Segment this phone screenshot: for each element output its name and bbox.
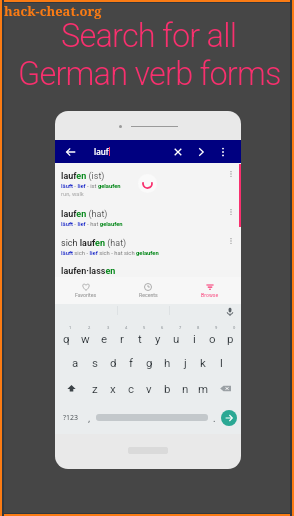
- button[interactable]: 9: [203, 323, 221, 349]
- staticText: Recents: [139, 292, 158, 298]
- button[interactable]: s: [85, 349, 104, 375]
- staticText: y: [155, 332, 161, 345]
- staticText: j: [184, 356, 187, 369]
- button[interactable]: Item menu: [226, 169, 236, 179]
- button[interactable]: .: [208, 401, 221, 434]
- staticText: läuft - lief - ist gelaufen: [61, 183, 121, 190]
- staticText: laufen (hat): [61, 209, 108, 220]
- staticText: v: [146, 382, 152, 395]
- staticText: 0: [233, 325, 236, 330]
- button[interactable]: f: [122, 349, 140, 375]
- button[interactable]: laufen·lassen: [61, 266, 241, 277]
- button[interactable]: n: [176, 375, 194, 401]
- button[interactable]: Item menu: [226, 236, 236, 246]
- button[interactable]: 7: [167, 323, 185, 349]
- staticText: k: [200, 356, 206, 369]
- staticText: b: [164, 382, 171, 395]
- staticText: läuft - lief - hat gelaufen: [61, 221, 123, 228]
- button[interactable]: ,: [83, 401, 96, 434]
- button[interactable]: 5: [131, 323, 149, 349]
- staticText: 1: [69, 325, 72, 330]
- button[interactable]: 8: [185, 323, 203, 349]
- button[interactable]: j: [176, 349, 194, 375]
- staticText: 8: [197, 325, 200, 330]
- button[interactable]: z: [85, 375, 104, 401]
- button[interactable]: sich laufen (hat): [55, 230, 241, 258]
- staticText: Search for all: [61, 17, 237, 55]
- button[interactable]: Voice input: [225, 307, 235, 317]
- button[interactable]: 4: [113, 323, 131, 349]
- button[interactable]: Shift: [57, 375, 85, 401]
- staticText: w: [81, 332, 90, 345]
- staticText: sich laufen (hat): [61, 238, 127, 249]
- staticText: laufen (ist): [61, 171, 105, 182]
- staticText: 4: [125, 325, 128, 330]
- staticText: i: [193, 332, 196, 345]
- staticText: x: [110, 382, 116, 395]
- button[interactable]: c: [122, 375, 140, 401]
- button[interactable]: More options: [215, 144, 231, 160]
- button[interactable]: Favorites: [55, 277, 117, 304]
- button[interactable]: Back: [62, 143, 80, 161]
- button[interactable]: h: [158, 349, 176, 375]
- button[interactable]: m: [194, 375, 212, 401]
- button[interactable]: 1: [57, 323, 76, 349]
- staticText: q: [63, 332, 70, 345]
- staticText: t: [138, 332, 142, 345]
- staticText: h: [164, 356, 171, 369]
- staticText: läuft sich - lief sich - hat sich gelauf…: [61, 250, 159, 257]
- staticText: .: [213, 412, 216, 424]
- button[interactable]: ?123: [59, 401, 83, 434]
- staticText: z: [92, 382, 98, 395]
- staticText: d: [110, 356, 117, 369]
- staticText: ?123: [63, 413, 79, 423]
- button[interactable]: Clear: [170, 144, 186, 160]
- staticText: e: [101, 332, 108, 345]
- button[interactable]: l: [212, 349, 230, 375]
- button[interactable]: 0: [221, 323, 239, 349]
- staticText: run, walk: [61, 191, 84, 198]
- button[interactable]: Enter: [221, 410, 237, 426]
- staticText: lauf: [94, 146, 109, 157]
- staticText: s: [92, 356, 98, 369]
- staticText: 6: [161, 325, 164, 330]
- staticText: 5: [143, 325, 146, 330]
- button[interactable]: 6: [149, 323, 167, 349]
- button[interactable]: Recents: [117, 277, 179, 304]
- staticText: laufen·lassen: [61, 266, 116, 277]
- button[interactable]: v: [140, 375, 158, 401]
- staticText: l: [220, 356, 223, 369]
- staticText: 7: [179, 325, 182, 330]
- button[interactable]: laufen (ist): [55, 163, 241, 200]
- button[interactable]: x: [104, 375, 122, 401]
- staticText: 2: [88, 325, 91, 330]
- staticText: n: [182, 382, 189, 395]
- staticText: f: [129, 356, 133, 369]
- staticText: Favorites: [75, 292, 97, 298]
- button[interactable]: 3: [95, 323, 113, 349]
- button[interactable]: 2: [76, 323, 95, 349]
- button[interactable]: d: [104, 349, 122, 375]
- staticText: a: [72, 356, 79, 369]
- button[interactable]: g: [140, 349, 158, 375]
- staticText: 3: [107, 325, 110, 330]
- staticText: p: [227, 332, 234, 345]
- button[interactable]: Item menu: [226, 207, 236, 217]
- staticText: German verb forms: [18, 55, 281, 93]
- button[interactable]: Next: [193, 144, 209, 160]
- button[interactable]: Backspace: [212, 375, 239, 401]
- staticText: Browse: [201, 292, 219, 298]
- button[interactable]: a: [66, 349, 85, 375]
- staticText: g: [146, 356, 153, 369]
- staticText: r: [120, 332, 124, 345]
- staticText: 9: [215, 325, 218, 330]
- staticText: o: [209, 332, 216, 345]
- staticText: ,: [88, 412, 91, 424]
- staticText: hack-cheat.org: [4, 2, 102, 20]
- button[interactable]: laufen (hat): [55, 201, 241, 229]
- button[interactable]: b: [158, 375, 176, 401]
- staticText: c: [128, 382, 135, 395]
- button[interactable]: Browse: [179, 277, 241, 304]
- button[interactable]: k: [194, 349, 212, 375]
